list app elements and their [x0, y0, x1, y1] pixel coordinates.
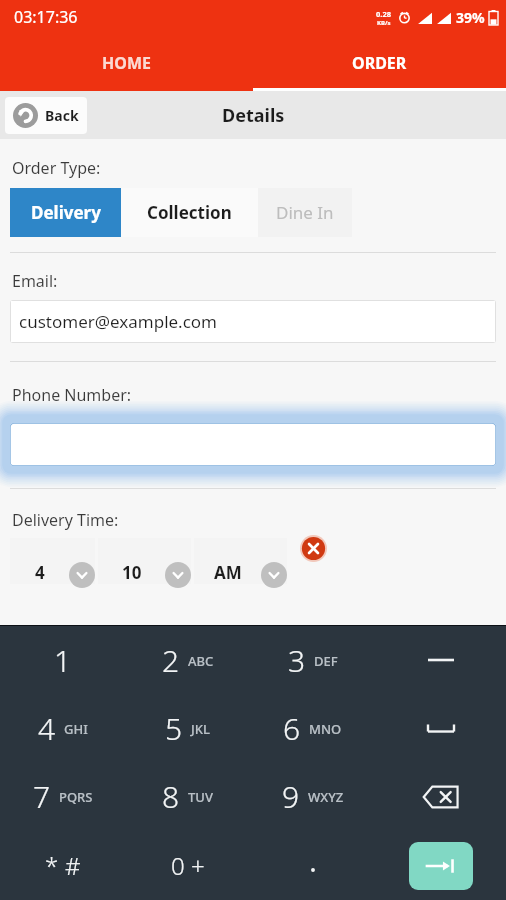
staticText: Details: [222, 103, 285, 128]
button[interactable]: 2: [125, 626, 250, 694]
staticText: AM: [214, 561, 242, 584]
staticText: DEF: [314, 652, 338, 670]
staticText: #: [65, 849, 81, 882]
button[interactable]: 4: [10, 538, 95, 584]
button[interactable]: ORDER: [253, 34, 506, 91]
staticText: 4: [35, 561, 45, 584]
button[interactable]: 3: [250, 626, 375, 694]
button[interactable]: AM: [194, 538, 287, 584]
button[interactable]: Next: [375, 831, 506, 900]
staticText: 3: [288, 640, 306, 681]
button[interactable]: Space: [375, 694, 506, 762]
staticText: JKL: [191, 720, 210, 738]
staticText: 0: [171, 849, 185, 882]
staticText: 8: [162, 776, 180, 817]
button[interactable]: 5: [125, 694, 250, 762]
button[interactable]: 0: [125, 831, 250, 900]
staticText: 5: [165, 708, 183, 749]
button[interactable]: Clear delivery time: [300, 535, 327, 562]
staticText: ORDER: [352, 52, 407, 74]
staticText: customer@example.com: [19, 310, 218, 333]
button[interactable]: 1: [0, 626, 125, 694]
button[interactable]: Back: [5, 97, 87, 134]
staticText: Back: [45, 106, 79, 125]
button[interactable]: Collection: [121, 188, 258, 237]
staticText: 03:17:36: [14, 6, 78, 28]
staticText: 0.28: [376, 9, 391, 19]
staticText: Phone Number:: [12, 384, 132, 406]
staticText: KB/s: [377, 19, 391, 27]
button[interactable]: Dine In: [258, 188, 352, 237]
staticText: Dine In: [276, 201, 334, 224]
staticText: Delivery Time:: [12, 509, 119, 531]
button[interactable]: Backspace: [375, 762, 506, 831]
staticText: +: [191, 849, 205, 882]
staticText: 39%: [456, 8, 485, 27]
staticText: GHI: [64, 720, 88, 738]
button[interactable]: Dash: [375, 626, 506, 694]
staticText: *: [45, 849, 59, 882]
button[interactable]: customer@example.com: [10, 300, 496, 343]
button[interactable]: Delivery: [10, 188, 121, 237]
staticText: 10: [122, 561, 142, 584]
button[interactable]: [10, 423, 496, 466]
staticText: Order Type:: [12, 157, 101, 179]
staticText: WXYZ: [308, 788, 344, 806]
staticText: MNO: [309, 720, 342, 738]
button[interactable]: 8: [125, 762, 250, 831]
button[interactable]: 10: [98, 538, 191, 584]
button[interactable]: *: [0, 831, 125, 900]
button[interactable]: HOME: [0, 34, 253, 91]
button[interactable]: 4: [0, 694, 125, 762]
staticText: 6: [283, 708, 301, 749]
staticText: 9: [282, 776, 300, 817]
staticText: Email:: [12, 270, 58, 292]
button[interactable]: 9: [250, 762, 375, 831]
staticText: 2: [162, 640, 180, 681]
staticText: 1: [54, 640, 72, 681]
staticText: TUV: [188, 788, 213, 806]
button[interactable]: 7: [0, 762, 125, 831]
staticText: HOME: [102, 52, 151, 74]
staticText: 7: [33, 776, 51, 817]
staticText: Delivery: [31, 201, 101, 224]
button[interactable]: Period: [250, 831, 375, 900]
staticText: ABC: [188, 652, 214, 670]
staticText: PQRS: [59, 788, 93, 806]
button[interactable]: 6: [250, 694, 375, 762]
staticText: Collection: [147, 201, 232, 224]
staticText: 4: [38, 708, 56, 749]
